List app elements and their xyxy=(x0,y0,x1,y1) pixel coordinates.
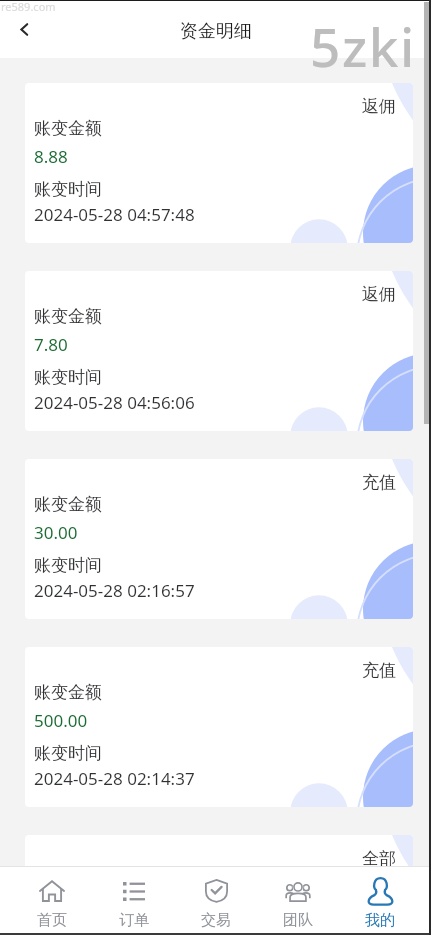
staticText: 500.00 xyxy=(34,709,88,732)
button[interactable]: 返佣 xyxy=(25,83,413,243)
button[interactable]: 充值 xyxy=(25,647,413,807)
staticText: 2024-05-28 04:57:48 xyxy=(34,203,195,226)
button[interactable]: 订单 xyxy=(93,872,175,930)
button[interactable]: 我的 xyxy=(339,872,421,930)
button[interactable]: 团队 xyxy=(257,872,339,930)
button[interactable]: 充值 xyxy=(25,459,413,619)
button[interactable]: 全部 xyxy=(25,835,413,866)
staticText: 全部 xyxy=(362,848,396,866)
staticText: 账变时间 xyxy=(34,367,102,388)
staticText: 充值 xyxy=(362,660,396,681)
button[interactable]: 交易 xyxy=(175,872,257,930)
staticText: 资金明细 xyxy=(180,20,252,43)
button[interactable]: Back xyxy=(6,9,46,49)
button[interactable]: 返佣 xyxy=(25,271,413,431)
staticText: 返佣 xyxy=(362,96,396,117)
staticText: 交易 xyxy=(201,911,231,930)
staticText: 账变时间 xyxy=(34,179,102,200)
staticText: 5zki xyxy=(310,10,416,82)
staticText: 30.00 xyxy=(34,521,78,544)
staticText: 账变时间 xyxy=(34,555,102,576)
staticText: 首页 xyxy=(37,911,67,930)
staticText: 订单 xyxy=(119,911,149,930)
staticText: 7.80 xyxy=(34,333,68,356)
staticText: 账变金额 xyxy=(34,682,102,703)
staticText: 账变金额 xyxy=(34,118,102,139)
staticText: 充值 xyxy=(362,472,396,493)
staticText: 2024-05-28 02:16:57 xyxy=(34,579,195,602)
staticText: re589.com xyxy=(1,0,56,14)
staticText: 账变金额 xyxy=(34,306,102,327)
staticText: 返佣 xyxy=(362,284,396,305)
staticText: 2024-05-28 04:56:06 xyxy=(34,391,195,414)
staticText: 团队 xyxy=(283,911,313,930)
staticText: 账变金额 xyxy=(34,494,102,515)
staticText: 我的 xyxy=(365,911,395,930)
button[interactable]: 首页 xyxy=(10,872,93,930)
staticText: 2024-05-28 02:14:37 xyxy=(34,767,195,790)
staticText: 8.88 xyxy=(34,145,68,168)
staticText: 账变时间 xyxy=(34,743,102,764)
